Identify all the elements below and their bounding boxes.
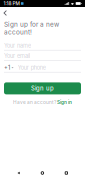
staticText: Sign in xyxy=(57,99,72,105)
staticText: Sign up for a new account! xyxy=(4,20,59,36)
staticText: 1:18 PM xyxy=(3,1,19,6)
button[interactable]: Sign in xyxy=(57,99,72,105)
button[interactable]: Country code xyxy=(4,64,14,71)
staticText: +1 xyxy=(4,64,10,71)
button[interactable]: Recent apps xyxy=(61,168,71,178)
staticText: Sign up xyxy=(31,85,54,92)
staticText: Your name xyxy=(4,42,31,49)
button[interactable]: Your email xyxy=(4,52,81,61)
button[interactable]: Your name xyxy=(4,41,81,51)
button[interactable]: Back xyxy=(0,7,11,19)
staticText: Have an account? xyxy=(13,99,57,105)
button[interactable]: Home xyxy=(37,168,48,178)
button[interactable]: Back xyxy=(13,168,24,178)
staticText: Your phone xyxy=(18,64,46,71)
staticText: Your email xyxy=(4,53,30,59)
button[interactable]: Sign up xyxy=(4,82,81,94)
